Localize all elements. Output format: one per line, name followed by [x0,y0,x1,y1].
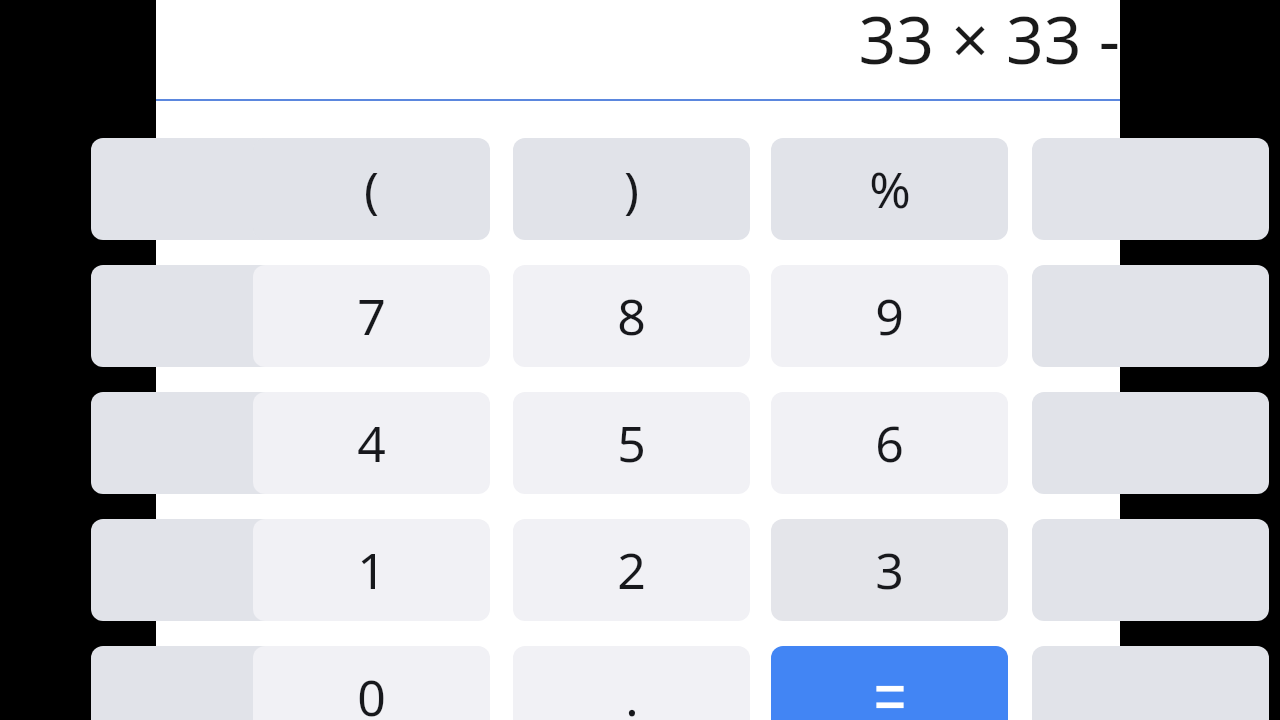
staticText: 2 [617,536,646,604]
button[interactable]: Clear [91,138,328,240]
button[interactable]: % [771,138,1008,240]
button[interactable]: . [513,646,750,720]
button[interactable]: Inverse [91,646,328,720]
button[interactable]: Multiply [1032,265,1269,367]
button[interactable]: 9 [771,265,1008,367]
staticText: 7 [357,282,386,350]
button[interactable]: 5 [513,392,750,494]
button[interactable]: Subtract [1032,392,1269,494]
button[interactable]: 7 [253,265,490,367]
button[interactable]: ( [253,138,490,240]
staticText: 1 [357,536,386,604]
button[interactable]: 4 [253,392,490,494]
button[interactable]: Add [1032,519,1269,621]
button[interactable]: 33 × 33 - [156,0,1120,99]
button[interactable]: 8 [513,265,750,367]
button[interactable]: Backspace [1032,646,1269,720]
staticText: 6 [875,409,904,477]
button[interactable]: Divide [1032,138,1269,240]
staticText: ) [624,155,639,223]
staticText: . [625,663,639,720]
button[interactable]: 0 [253,646,490,720]
button[interactable]: ) [513,138,750,240]
staticText: 33 × 33 - [858,0,1120,83]
staticText: ( [364,155,379,223]
staticText: 0 [357,663,386,720]
button[interactable]: Power [91,392,328,494]
button[interactable]: 1 [253,519,490,621]
button[interactable]: Square root [91,265,328,367]
button[interactable]: 6 [771,392,1008,494]
button[interactable]: Factorial [91,519,328,621]
staticText: 3 [875,536,904,604]
staticText: 9 [875,282,904,350]
button[interactable]: 3 [771,519,1008,621]
staticText: 4 [357,409,386,477]
staticText: % [869,155,911,223]
staticText: 8 [617,282,646,350]
staticText: 5 [617,409,646,477]
button[interactable]: 2 [513,519,750,621]
button[interactable]: Equals [771,646,1008,720]
